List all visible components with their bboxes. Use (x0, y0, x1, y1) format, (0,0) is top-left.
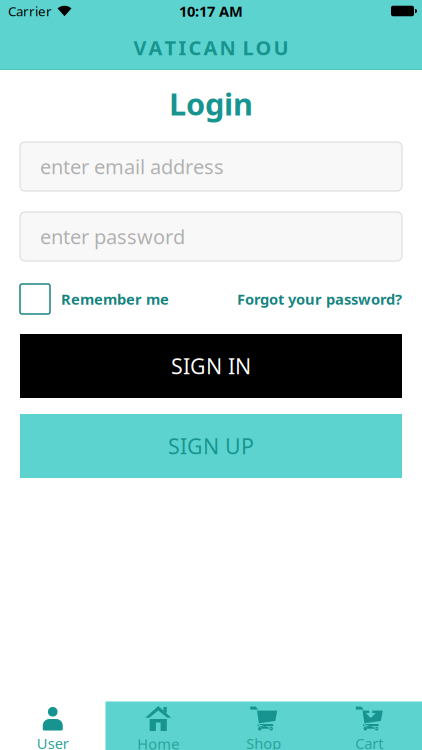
button[interactable]: Shop (211, 701, 316, 750)
staticText: 10:17 AM (179, 1, 243, 21)
staticText: Login (169, 83, 253, 124)
button[interactable]: Home (105, 701, 211, 750)
staticText: Shop (246, 733, 281, 750)
staticText: Home (137, 734, 179, 750)
staticText: Carrier (8, 2, 52, 20)
staticText: V A T I C A N L O U (133, 34, 288, 61)
staticText: Forgot your password? (237, 289, 402, 309)
button[interactable]: SIGN UP (20, 414, 402, 478)
staticText: SIGN UP (168, 432, 254, 460)
button[interactable]: Remember me (20, 284, 169, 314)
button[interactable]: Cart (316, 701, 422, 750)
staticText: SIGN IN (171, 352, 251, 380)
staticText: enter password (40, 223, 185, 250)
button[interactable]: User (0, 701, 105, 750)
button[interactable]: SIGN IN (20, 334, 402, 398)
staticText: Cart (355, 733, 383, 750)
staticText: enter email address (40, 153, 224, 180)
staticText: Remember me (61, 289, 169, 309)
button[interactable]: Forgot your password? (237, 289, 402, 309)
staticText: User (37, 733, 69, 750)
